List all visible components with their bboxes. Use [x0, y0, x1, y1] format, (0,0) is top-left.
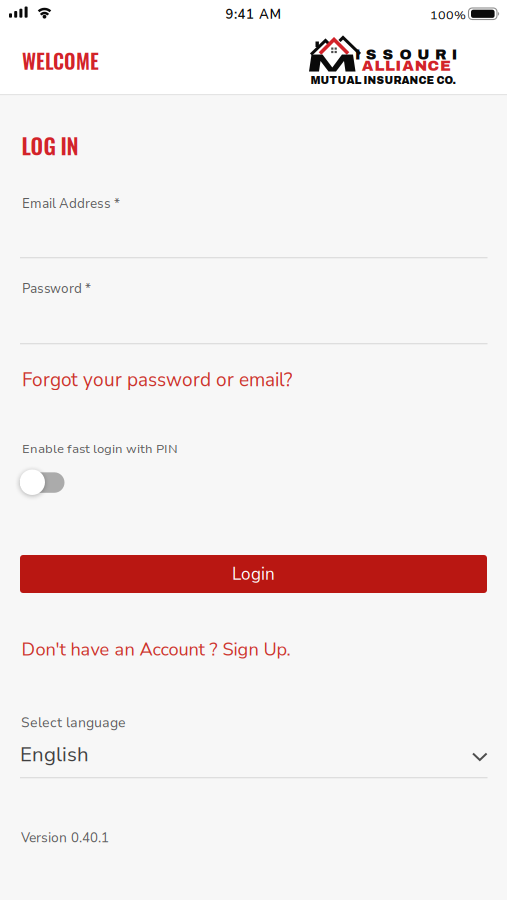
staticText: Version 0.40.1 [21, 829, 109, 847]
staticText: English [20, 741, 89, 768]
staticText: Email Address * [22, 195, 120, 212]
button[interactable]: Sign Up. [222, 637, 290, 662]
staticText: Select language [21, 713, 126, 732]
staticText: WELCOME [22, 46, 99, 76]
button[interactable]: Enable fast login with PIN [19, 469, 65, 495]
staticText: 100% [430, 6, 466, 24]
staticText: Don't have an Account ? [21, 637, 222, 662]
staticText: LOG IN [21, 129, 78, 162]
button[interactable]: English [20, 741, 487, 767]
staticText: Sign Up. [222, 637, 290, 662]
staticText: Forgot your password or email? [22, 367, 292, 393]
staticText: 9:41 AM [225, 5, 281, 23]
staticText: Login [232, 562, 275, 586]
staticText: Enable fast login with PIN [22, 440, 178, 457]
staticText: ISSOURI [355, 46, 457, 62]
button[interactable]: Login [20, 555, 487, 593]
staticText: ALLIANCE [362, 58, 451, 74]
staticText: MUTUAL INSURANCE CO. [310, 75, 455, 86]
button[interactable]: Forgot your password or email? [22, 367, 292, 393]
staticText: Password * [22, 280, 91, 297]
